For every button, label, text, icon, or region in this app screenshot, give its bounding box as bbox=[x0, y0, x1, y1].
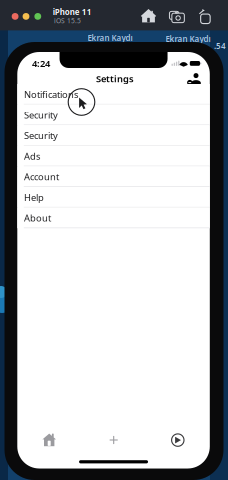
button[interactable]: Rotate bbox=[193, 5, 215, 27]
button[interactable]: Help bbox=[17, 187, 210, 208]
button[interactable]: Play bbox=[165, 427, 191, 453]
button[interactable]: Security bbox=[17, 125, 210, 146]
staticText: iOS 15.5 bbox=[54, 16, 81, 25]
staticText: About bbox=[24, 212, 51, 224]
staticText: Account bbox=[24, 170, 59, 183]
staticText: Security bbox=[24, 109, 58, 121]
staticText: Notifications bbox=[24, 88, 78, 100]
button[interactable]: Security bbox=[17, 105, 210, 125]
staticText: Help bbox=[24, 191, 44, 203]
button[interactable]: Home bbox=[137, 5, 159, 27]
button[interactable]: Home bbox=[36, 427, 62, 453]
button[interactable]: Notifications bbox=[17, 84, 210, 105]
button[interactable]: Account bbox=[17, 166, 210, 187]
staticText: Ekran Kaydı bbox=[165, 33, 210, 44]
button[interactable]: Add bbox=[101, 427, 127, 453]
button[interactable]: Minimize bbox=[23, 13, 29, 20]
staticText: iPhone 11 bbox=[53, 6, 92, 17]
button[interactable]: About bbox=[17, 208, 210, 228]
button[interactable]: Screenshot bbox=[166, 5, 188, 27]
button[interactable]: Ads bbox=[17, 146, 210, 166]
staticText: .54 bbox=[214, 41, 226, 51]
staticText: 4:24 bbox=[32, 57, 50, 69]
staticText: Settings bbox=[96, 72, 134, 85]
button[interactable]: Close bbox=[12, 13, 18, 20]
staticText: Ads bbox=[24, 150, 40, 162]
button[interactable]: Account bbox=[186, 70, 204, 88]
staticText: Ekran Kaydı bbox=[87, 32, 132, 43]
staticText: Security bbox=[24, 129, 58, 142]
button[interactable]: Zoom bbox=[34, 13, 41, 20]
